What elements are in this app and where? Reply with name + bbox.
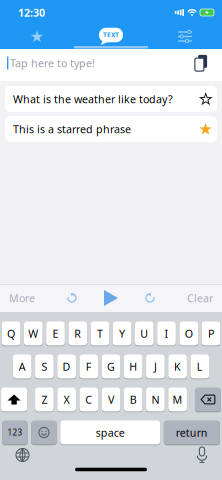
- staticText: E: [52, 326, 58, 341]
- staticText: What is the weather like today?: [13, 92, 173, 106]
- button[interactable]: T: [91, 321, 109, 346]
- button[interactable]: 123: [2, 420, 28, 445]
- staticText: S: [41, 359, 47, 374]
- button[interactable]: X: [57, 387, 76, 412]
- button[interactable]: W: [24, 321, 43, 346]
- button[interactable]: F: [79, 354, 98, 379]
- staticText: 123: [7, 427, 22, 438]
- button[interactable]: O: [179, 321, 198, 346]
- staticText: J: [154, 359, 157, 374]
- staticText: I: [164, 326, 168, 341]
- button[interactable]: L: [190, 354, 209, 379]
- staticText: T: [97, 326, 103, 341]
- staticText: More: [9, 291, 35, 305]
- button[interactable]: Settings: [148, 24, 222, 48]
- button[interactable]: Play: [99, 284, 123, 312]
- button[interactable]: Y: [113, 321, 131, 346]
- button[interactable]: Starred phrases: [0, 24, 74, 48]
- button[interactable]: M: [168, 387, 187, 412]
- staticText: R: [74, 326, 81, 341]
- button[interactable]: Next keyboard: [7, 442, 37, 468]
- staticText: A: [19, 359, 26, 374]
- staticText: F: [86, 359, 92, 374]
- staticText: K: [174, 359, 181, 374]
- button[interactable]: H: [124, 354, 142, 379]
- button[interactable]: S: [35, 354, 54, 379]
- staticText: P: [208, 326, 214, 341]
- button[interactable]: Z: [35, 387, 54, 412]
- staticText: L: [197, 359, 203, 374]
- staticText: space: [96, 425, 125, 440]
- staticText: V: [108, 392, 114, 407]
- button[interactable]: C: [79, 387, 98, 412]
- button[interactable]: return: [164, 420, 220, 445]
- button[interactable]: Text: [74, 24, 148, 48]
- button[interactable]: N: [146, 387, 165, 412]
- button[interactable]: This is a starred phrase: [5, 116, 217, 142]
- button[interactable]: U: [135, 321, 154, 346]
- button[interactable]: E: [46, 321, 65, 346]
- staticText: This is a starred phrase: [13, 122, 131, 136]
- button[interactable]: J: [146, 354, 165, 379]
- staticText: return: [176, 425, 208, 440]
- staticText: Y: [119, 326, 125, 341]
- staticText: B: [130, 392, 137, 407]
- button[interactable]: I: [157, 321, 176, 346]
- button[interactable]: What is the weather like today?: [5, 86, 217, 112]
- button[interactable]: Undo: [61, 284, 83, 312]
- staticText: Z: [41, 392, 47, 407]
- button[interactable]: Q: [2, 321, 20, 346]
- button[interactable]: G: [102, 354, 120, 379]
- staticText: X: [64, 392, 70, 407]
- button[interactable]: K: [168, 354, 187, 379]
- staticText: W: [28, 326, 38, 341]
- button[interactable]: Clear: [187, 284, 222, 312]
- staticText: 12:30: [18, 5, 45, 20]
- staticText: C: [85, 392, 92, 407]
- staticText: O: [185, 326, 193, 341]
- button[interactable]: Dictate: [189, 442, 215, 468]
- button[interactable]: Delete: [195, 387, 221, 412]
- staticText: TEXT: [103, 30, 119, 39]
- button[interactable]: R: [68, 321, 87, 346]
- staticText: D: [63, 359, 71, 374]
- button[interactable]: D: [57, 354, 76, 379]
- button[interactable]: Redo: [139, 284, 161, 312]
- button[interactable]: Paste: [188, 50, 214, 76]
- staticText: Tap here to type!: [10, 56, 95, 70]
- button[interactable]: Shift: [1, 387, 27, 412]
- staticText: H: [129, 359, 137, 374]
- button[interactable]: A: [13, 354, 31, 379]
- staticText: M: [173, 392, 183, 407]
- staticText: Q: [7, 326, 15, 341]
- button[interactable]: space: [60, 420, 160, 445]
- staticText: G: [107, 359, 115, 374]
- staticText: N: [151, 392, 159, 407]
- button[interactable]: More: [0, 284, 35, 312]
- button[interactable]: P: [202, 321, 220, 346]
- staticText: U: [140, 326, 148, 341]
- button[interactable]: V: [102, 387, 120, 412]
- button[interactable]: Emoji: [31, 420, 57, 445]
- staticText: Clear: [187, 291, 213, 305]
- button[interactable]: B: [124, 387, 142, 412]
